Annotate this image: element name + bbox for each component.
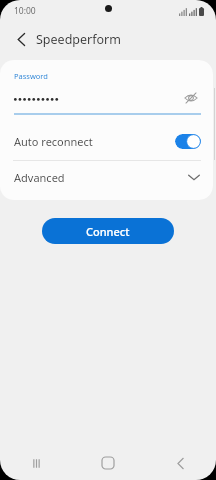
staticText: 10:00 bbox=[14, 5, 36, 17]
button[interactable]: Advanced bbox=[0, 161, 213, 194]
button[interactable]: Home bbox=[72, 446, 144, 480]
staticText: Speedperform bbox=[36, 31, 121, 48]
button[interactable]: Back bbox=[8, 26, 34, 52]
button[interactable]: Auto reconnect toggle bbox=[175, 134, 201, 149]
staticText: Connect bbox=[86, 224, 130, 239]
button[interactable]: Password bbox=[0, 60, 213, 115]
button[interactable]: Recent apps bbox=[0, 446, 72, 480]
staticText: Auto reconnect bbox=[14, 134, 175, 149]
button[interactable]: Back bbox=[144, 446, 216, 480]
button[interactable]: Show password bbox=[181, 88, 201, 108]
button[interactable]: Auto reconnect bbox=[0, 128, 213, 154]
staticText: Password bbox=[14, 71, 48, 81]
button[interactable]: Connect bbox=[42, 218, 174, 244]
staticText: Advanced bbox=[14, 170, 187, 185]
